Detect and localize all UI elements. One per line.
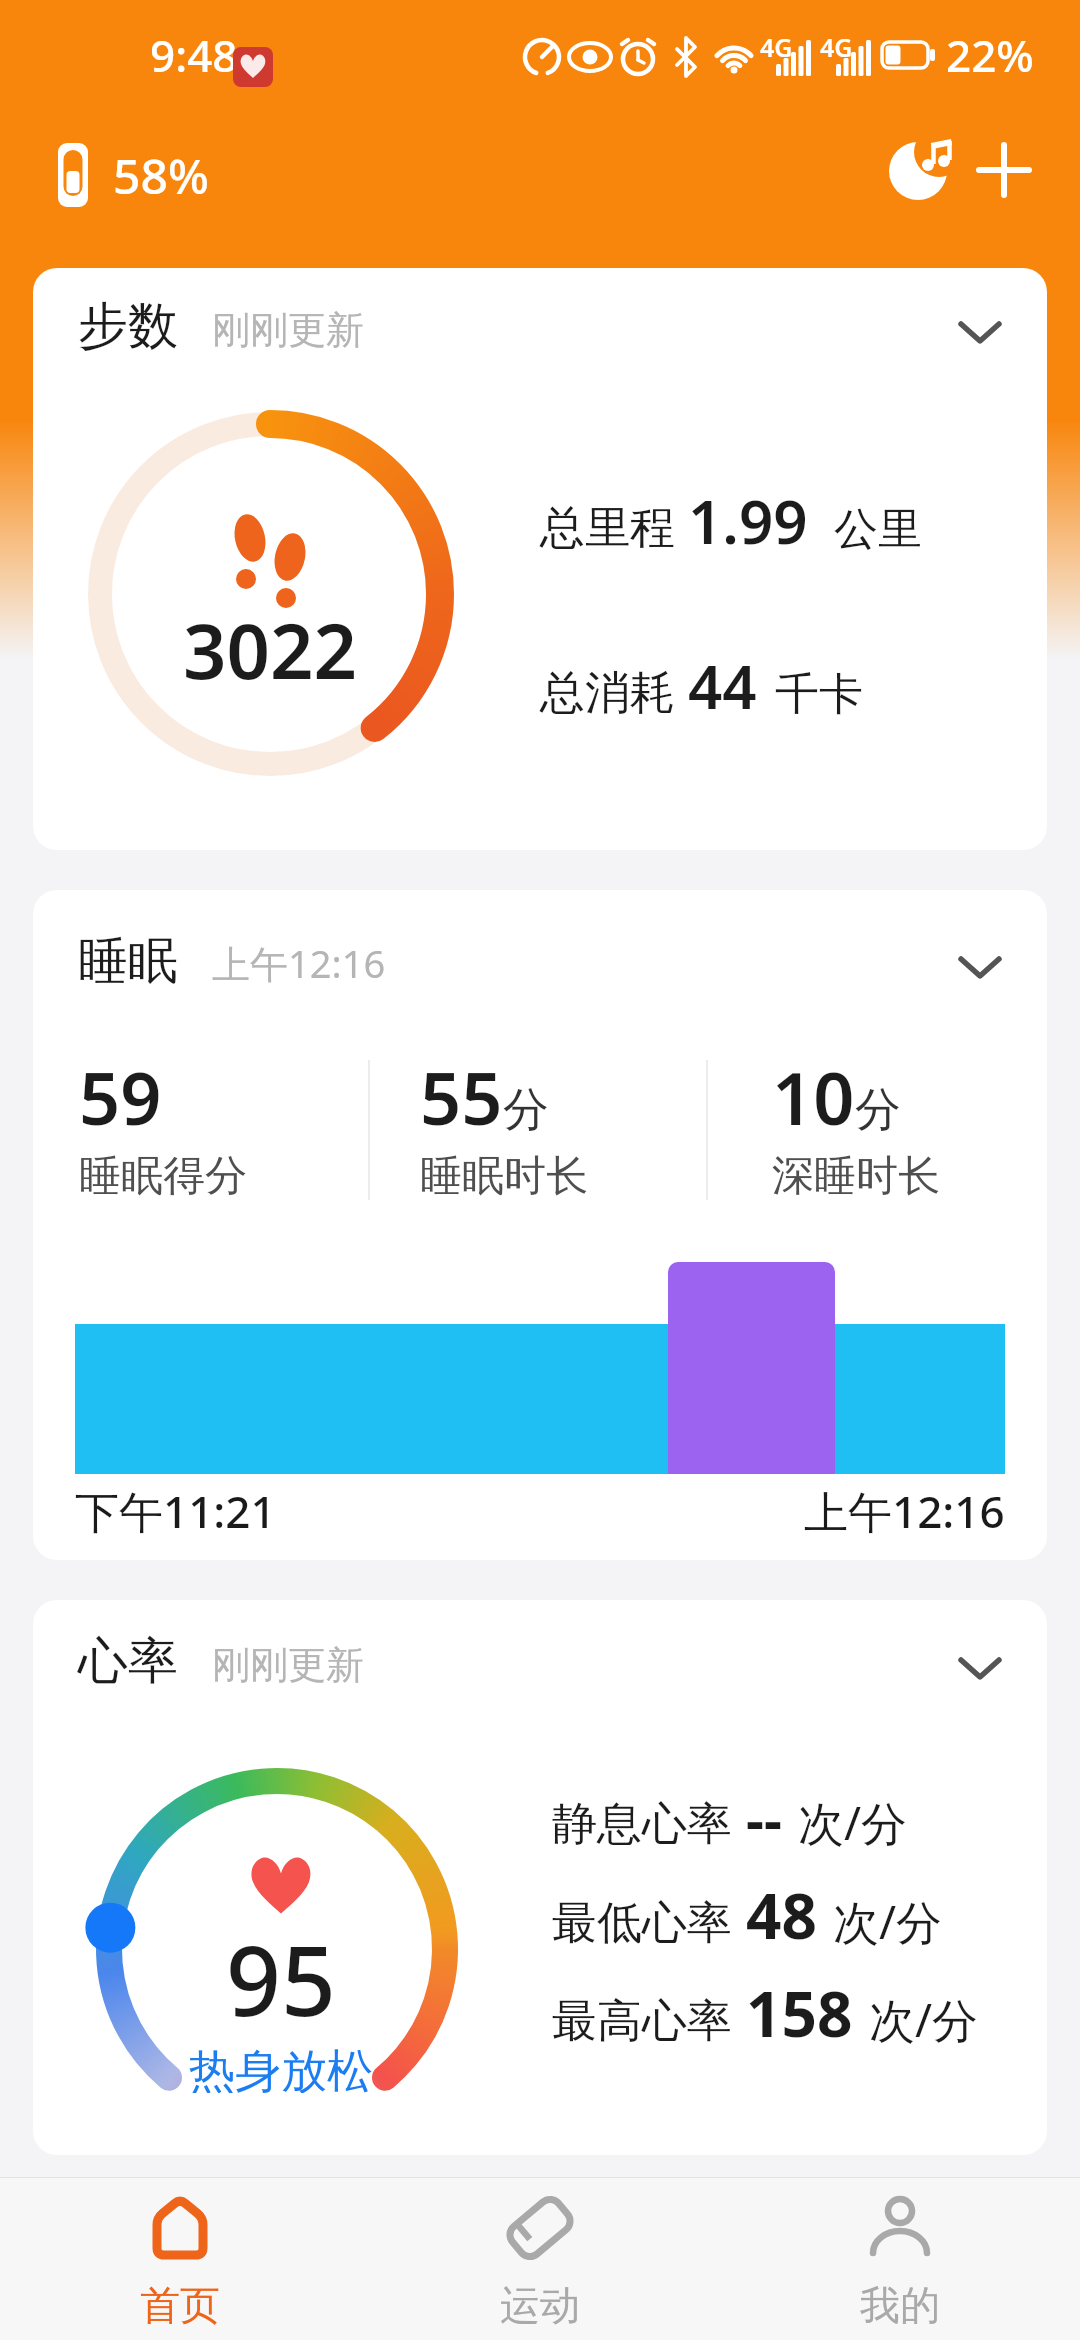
staticText: 下午11:21 bbox=[75, 1481, 276, 1541]
staticText: 运动 bbox=[500, 2280, 580, 2330]
staticText: 48 bbox=[746, 1873, 817, 1957]
staticText: 心率 bbox=[78, 1630, 178, 1693]
staticText: 4G bbox=[820, 30, 853, 64]
staticText: 刚刚更新 bbox=[212, 1641, 364, 1689]
staticText: 55 bbox=[420, 1048, 503, 1146]
button[interactable] bbox=[979, 145, 1029, 195]
staticText: 热身放松 bbox=[189, 2043, 373, 2093]
staticText: 95 bbox=[226, 1913, 336, 2043]
staticText: 千卡 bbox=[775, 667, 863, 722]
staticText: 首页 bbox=[140, 2280, 220, 2330]
staticText: 次/分 bbox=[869, 1988, 979, 2051]
staticText: 上午12:16 bbox=[212, 937, 386, 989]
button[interactable]: 我的 bbox=[720, 2178, 1080, 2340]
staticText: 刚刚更新 bbox=[212, 306, 364, 354]
staticText: 公里 bbox=[834, 502, 922, 557]
staticText: 深睡时长 bbox=[772, 1150, 940, 1203]
staticText: 9:48 bbox=[150, 25, 238, 85]
staticText: 10 bbox=[772, 1048, 855, 1146]
button[interactable]: 首页 bbox=[0, 2178, 360, 2340]
staticText: 上午12:16 bbox=[804, 1481, 1005, 1541]
staticText: 我的 bbox=[860, 2280, 940, 2330]
button[interactable]: 心率 bbox=[33, 1600, 1047, 2155]
staticText: 睡眠 bbox=[78, 930, 178, 993]
staticText: 总里程 bbox=[540, 500, 675, 557]
button[interactable]: 58% bbox=[58, 110, 209, 240]
button[interactable]: 睡眠 bbox=[33, 890, 1047, 1560]
staticText: 静息心率 bbox=[552, 1796, 732, 1853]
staticText: 次/分 bbox=[798, 1791, 908, 1854]
staticText: 睡眠时长 bbox=[420, 1150, 588, 1203]
button[interactable]: 步数 bbox=[33, 268, 1047, 850]
staticText: 分 bbox=[503, 1081, 549, 1139]
staticText: 59 bbox=[79, 1048, 162, 1146]
staticText: 4G bbox=[760, 30, 793, 64]
staticText: 总消耗 bbox=[540, 665, 675, 722]
staticText: 158 bbox=[746, 1971, 853, 2055]
staticText: 最高心率 bbox=[552, 1993, 732, 2050]
staticText: 58% bbox=[113, 143, 209, 208]
staticText: 3022 bbox=[183, 598, 357, 702]
staticText: 最低心率 bbox=[552, 1895, 732, 1952]
staticText: 44 bbox=[688, 645, 757, 727]
staticText: -- bbox=[746, 1780, 782, 1856]
button[interactable] bbox=[888, 137, 954, 203]
staticText: 睡眠得分 bbox=[79, 1150, 247, 1203]
staticText: 22% bbox=[946, 25, 1034, 85]
staticText: 步数 bbox=[78, 295, 178, 358]
staticText: 次/分 bbox=[833, 1890, 943, 1953]
staticText: 分 bbox=[855, 1081, 901, 1139]
staticText: 1.99 bbox=[688, 480, 808, 562]
button[interactable]: 运动 bbox=[360, 2178, 720, 2340]
